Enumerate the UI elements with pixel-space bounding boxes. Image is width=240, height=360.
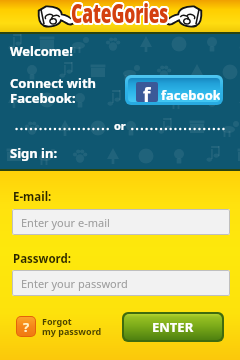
staticText: CateGories (71, 0, 168, 28)
staticText: or (114, 118, 126, 133)
staticText: E-mail: (13, 189, 52, 205)
staticText: Welcome! (10, 42, 73, 60)
staticText: Sign in: (10, 144, 58, 162)
staticText: CateGories (71, 0, 168, 24)
button[interactable]: ? (16, 315, 102, 337)
staticText: facebook (161, 86, 220, 102)
staticText: CateGories (71, 0, 168, 27)
staticText: CateGories (70, 0, 167, 26)
staticText: CateGories (72, 0, 170, 26)
staticText: CateGories (70, 0, 168, 26)
staticText: CateGories (70, 0, 168, 25)
staticText: CateGories (72, 0, 169, 27)
staticText: ENTER (152, 318, 194, 336)
staticText: CateGories (72, 0, 170, 27)
button[interactable]: Enter your e-mail (12, 209, 230, 235)
staticText: CateGories (71, 0, 168, 26)
staticText: CateGories (70, 0, 168, 24)
staticText: f (143, 82, 151, 102)
staticText: CateGories (72, 0, 169, 24)
button[interactable]: ENTER (122, 312, 224, 342)
staticText: CateGories (70, 0, 168, 28)
staticText: Forgot my password (42, 315, 102, 337)
staticText: CateGories (70, 0, 168, 27)
staticText: Connect with Facebook: (10, 74, 96, 107)
staticText: CateGories (71, 0, 168, 25)
staticText: Enter your password (21, 276, 128, 291)
staticText: CateGories (70, 0, 167, 27)
staticText: ? (23, 318, 30, 336)
button[interactable]: Enter your password (12, 270, 230, 296)
staticText: CateGories (72, 0, 169, 28)
button[interactable]: f (125, 75, 223, 105)
staticText: CateGories (72, 0, 169, 26)
staticText: Password: (13, 251, 72, 267)
staticText: Enter your e-mail (21, 215, 110, 230)
staticText: CateGories (72, 0, 170, 25)
staticText: CateGories (72, 0, 169, 25)
staticText: CateGories (70, 0, 167, 25)
